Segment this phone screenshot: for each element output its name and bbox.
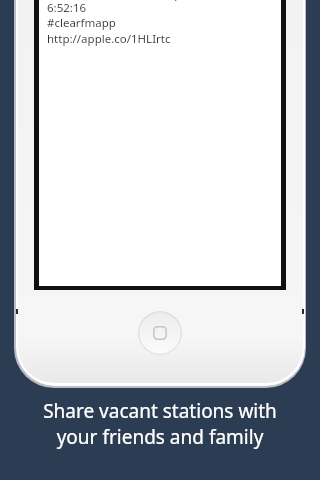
staticText: Share vacant stations with your friends …	[43, 398, 277, 450]
staticText: http://apple.co/1HLIrtc	[47, 31, 171, 47]
button[interactable]: Home	[138, 311, 182, 355]
staticText: Vacant stations near Cupertino, CA at 6:…	[47, 0, 289, 15]
staticText: #clearfmapp	[47, 15, 116, 31]
